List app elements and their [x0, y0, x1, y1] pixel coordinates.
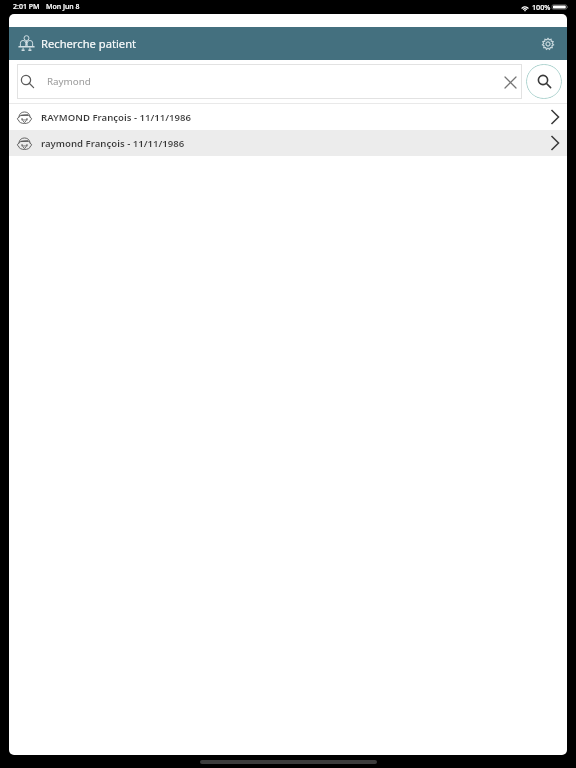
staticText: Mon Jun 8 — [46, 2, 80, 12]
staticText: raymond François - 11/11/1986 — [41, 137, 185, 150]
staticText: 2:01 PM — [13, 2, 40, 12]
button[interactable]: RAYMOND François - 11/11/1986 — [9, 104, 567, 130]
staticText: Raymond — [47, 75, 91, 88]
staticText: 100% — [532, 2, 551, 12]
staticText: RAYMOND François - 11/11/1986 — [41, 111, 192, 124]
button[interactable]: Settings — [534, 30, 562, 58]
button[interactable]: raymond François - 11/11/1986 — [9, 130, 567, 156]
staticText: Recherche patient — [41, 36, 137, 51]
button[interactable]: Raymond — [17, 64, 522, 99]
button[interactable]: Clear — [502, 74, 518, 90]
button[interactable]: Search — [526, 64, 562, 99]
